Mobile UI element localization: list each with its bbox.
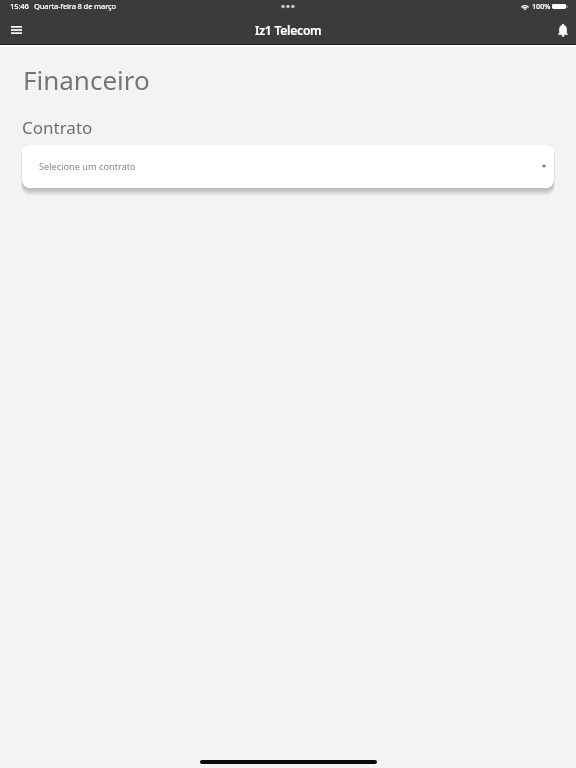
- button[interactable]: Selecione um contrato: [22, 145, 554, 188]
- staticText: Iz1 Telecom: [255, 22, 322, 38]
- staticText: Quarta-feira 8 de março: [34, 1, 116, 11]
- staticText: Financeiro: [23, 62, 150, 97]
- staticText: Selecione um contrato: [39, 160, 136, 173]
- button[interactable]: Notifications: [551, 18, 575, 42]
- staticText: 100%: [532, 1, 551, 11]
- staticText: 15:46: [10, 1, 29, 11]
- button[interactable]: Open navigation menu: [4, 18, 28, 42]
- staticText: Contrato: [22, 116, 93, 139]
